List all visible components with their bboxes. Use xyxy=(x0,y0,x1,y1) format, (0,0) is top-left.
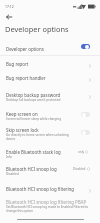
button[interactable]: Bug report handler xyxy=(0,72,100,83)
staticText: Developer options xyxy=(5,24,69,34)
button[interactable]: Open xyxy=(85,92,94,101)
button[interactable]: Developer options on xyxy=(81,44,90,49)
staticText: Desktop backup password xyxy=(6,92,61,98)
button[interactable]: Desktop backup password xyxy=(0,89,100,103)
button[interactable]: Skip screen lock xyxy=(0,124,100,143)
button[interactable]: Skip screen lock off xyxy=(81,130,90,135)
button[interactable]: Back xyxy=(4,12,14,22)
button[interactable]: Open xyxy=(85,61,94,70)
staticText: Bug report xyxy=(6,61,29,67)
staticText: 17:12 xyxy=(5,4,14,9)
staticText: Screen will never sleep while charging xyxy=(6,117,62,121)
staticText: Desktop full backups aren't protected xyxy=(6,98,61,102)
staticText: Keep screen on xyxy=(6,111,38,117)
staticText: Bluetooth HCI snoop log filtering xyxy=(6,186,74,192)
staticText: Set Bluetooth HCI snoop log mode to Enab… xyxy=(6,205,92,213)
button[interactable]: Bug report xyxy=(0,58,100,69)
staticText: Disabled xyxy=(6,172,19,176)
staticText: Bluetooth HCI snoop log filtering PBAP xyxy=(6,199,87,205)
staticText: Developer options xyxy=(6,46,44,52)
button[interactable]: Bluetooth HCI snoop log xyxy=(0,163,100,177)
staticText: only xyxy=(78,150,84,154)
staticText: Bluetooth HCI snoop log xyxy=(6,166,57,172)
button[interactable]: Open xyxy=(85,75,94,84)
staticText: Info xyxy=(6,155,12,159)
staticText: Bug report handler xyxy=(6,75,46,81)
button[interactable]: Change Disabled xyxy=(73,167,90,171)
button[interactable]: Enable Bluetooth stack log xyxy=(0,146,100,160)
button[interactable]: Open xyxy=(85,186,94,195)
button[interactable]: Change only xyxy=(78,150,88,154)
button[interactable]: Keep screen on xyxy=(0,108,100,122)
button[interactable]: Bluetooth HCI snoop log filtering PBAP xyxy=(0,196,100,215)
staticText: Skip screen lock xyxy=(6,127,39,133)
button[interactable]: Bluetooth HCI snoop log filtering xyxy=(0,183,100,194)
staticText: Enable Bluetooth stack log xyxy=(6,149,61,155)
button[interactable]: Developer options xyxy=(0,43,100,54)
button[interactable]: Keep screen on off xyxy=(81,112,90,117)
staticText: Disabled xyxy=(73,167,86,171)
staticText: Go directly to home screen when unlockin… xyxy=(6,133,69,141)
